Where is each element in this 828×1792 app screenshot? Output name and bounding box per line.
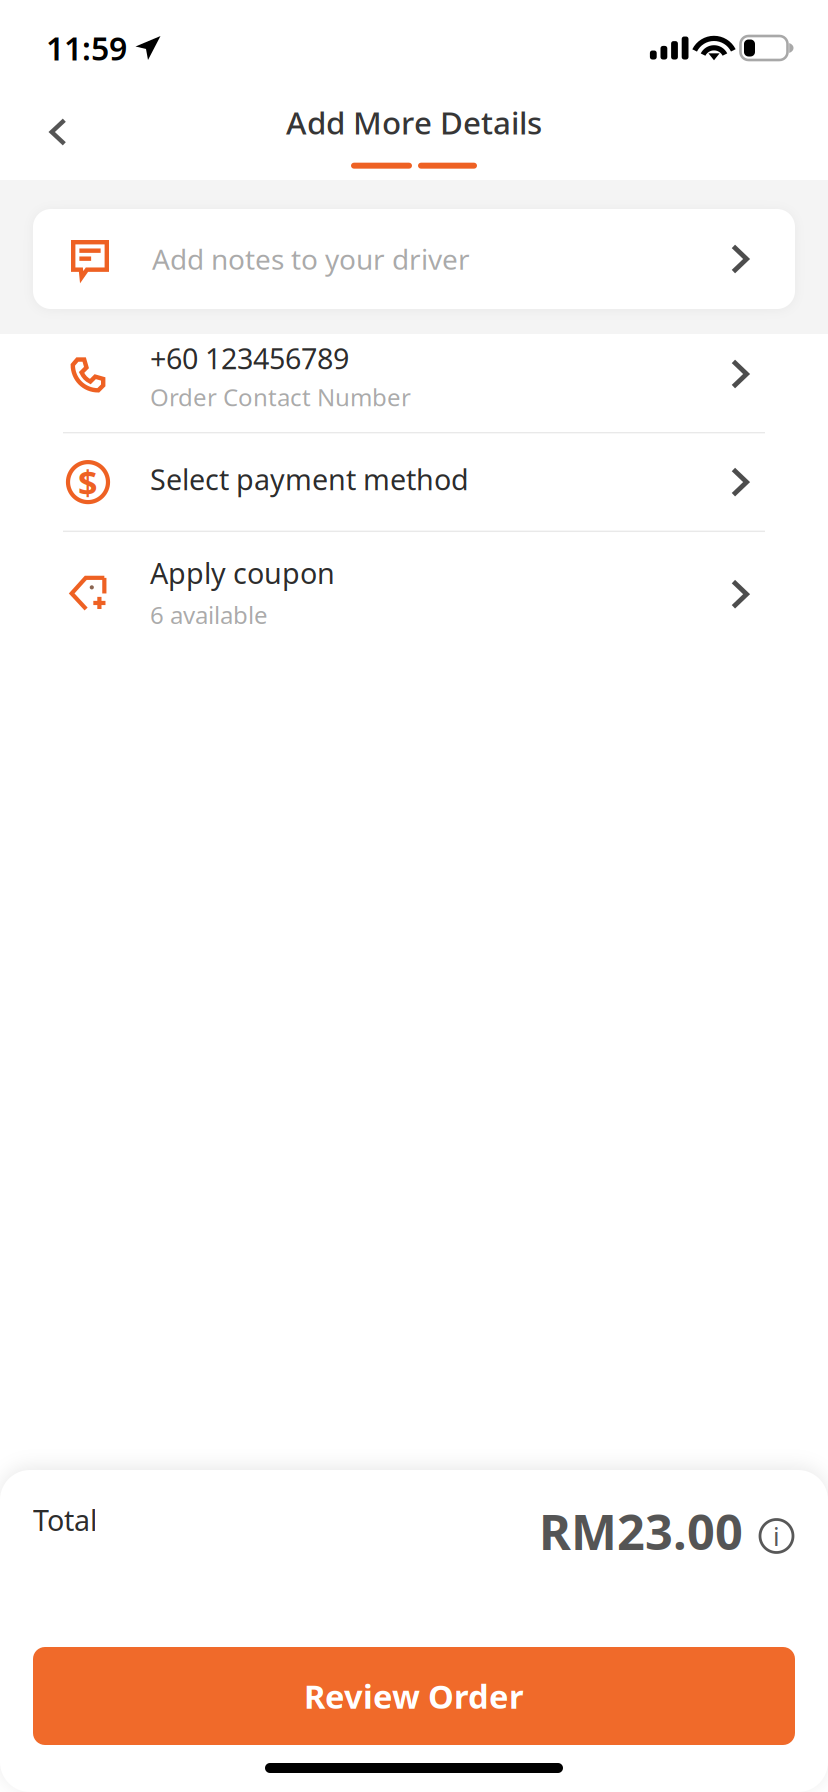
staticText: Add notes to your driver	[152, 240, 470, 278]
staticText: RM23.00	[539, 1498, 743, 1564]
staticText: 6 available	[150, 598, 268, 631]
button[interactable]: $	[0, 434, 828, 531]
staticText: +60 123456789	[150, 339, 349, 378]
staticText: Select payment method	[150, 460, 469, 499]
button[interactable]: Add notes to your driver	[33, 209, 795, 309]
staticText: Order Contact Number	[150, 381, 411, 413]
button[interactable]: Back	[26, 100, 90, 164]
staticText: Apply coupon	[150, 553, 335, 592]
staticText: Review Order	[304, 1674, 524, 1718]
staticText: Add More Details	[286, 101, 542, 144]
staticText: i	[773, 1519, 780, 1553]
staticText: Total	[33, 1500, 97, 1539]
staticText: $	[78, 459, 98, 505]
staticText: 11:59	[46, 26, 127, 70]
button[interactable]: +60 123456789	[0, 334, 828, 432]
button[interactable]: Review Order	[33, 1647, 795, 1745]
button[interactable]: Apply coupon	[0, 532, 828, 644]
